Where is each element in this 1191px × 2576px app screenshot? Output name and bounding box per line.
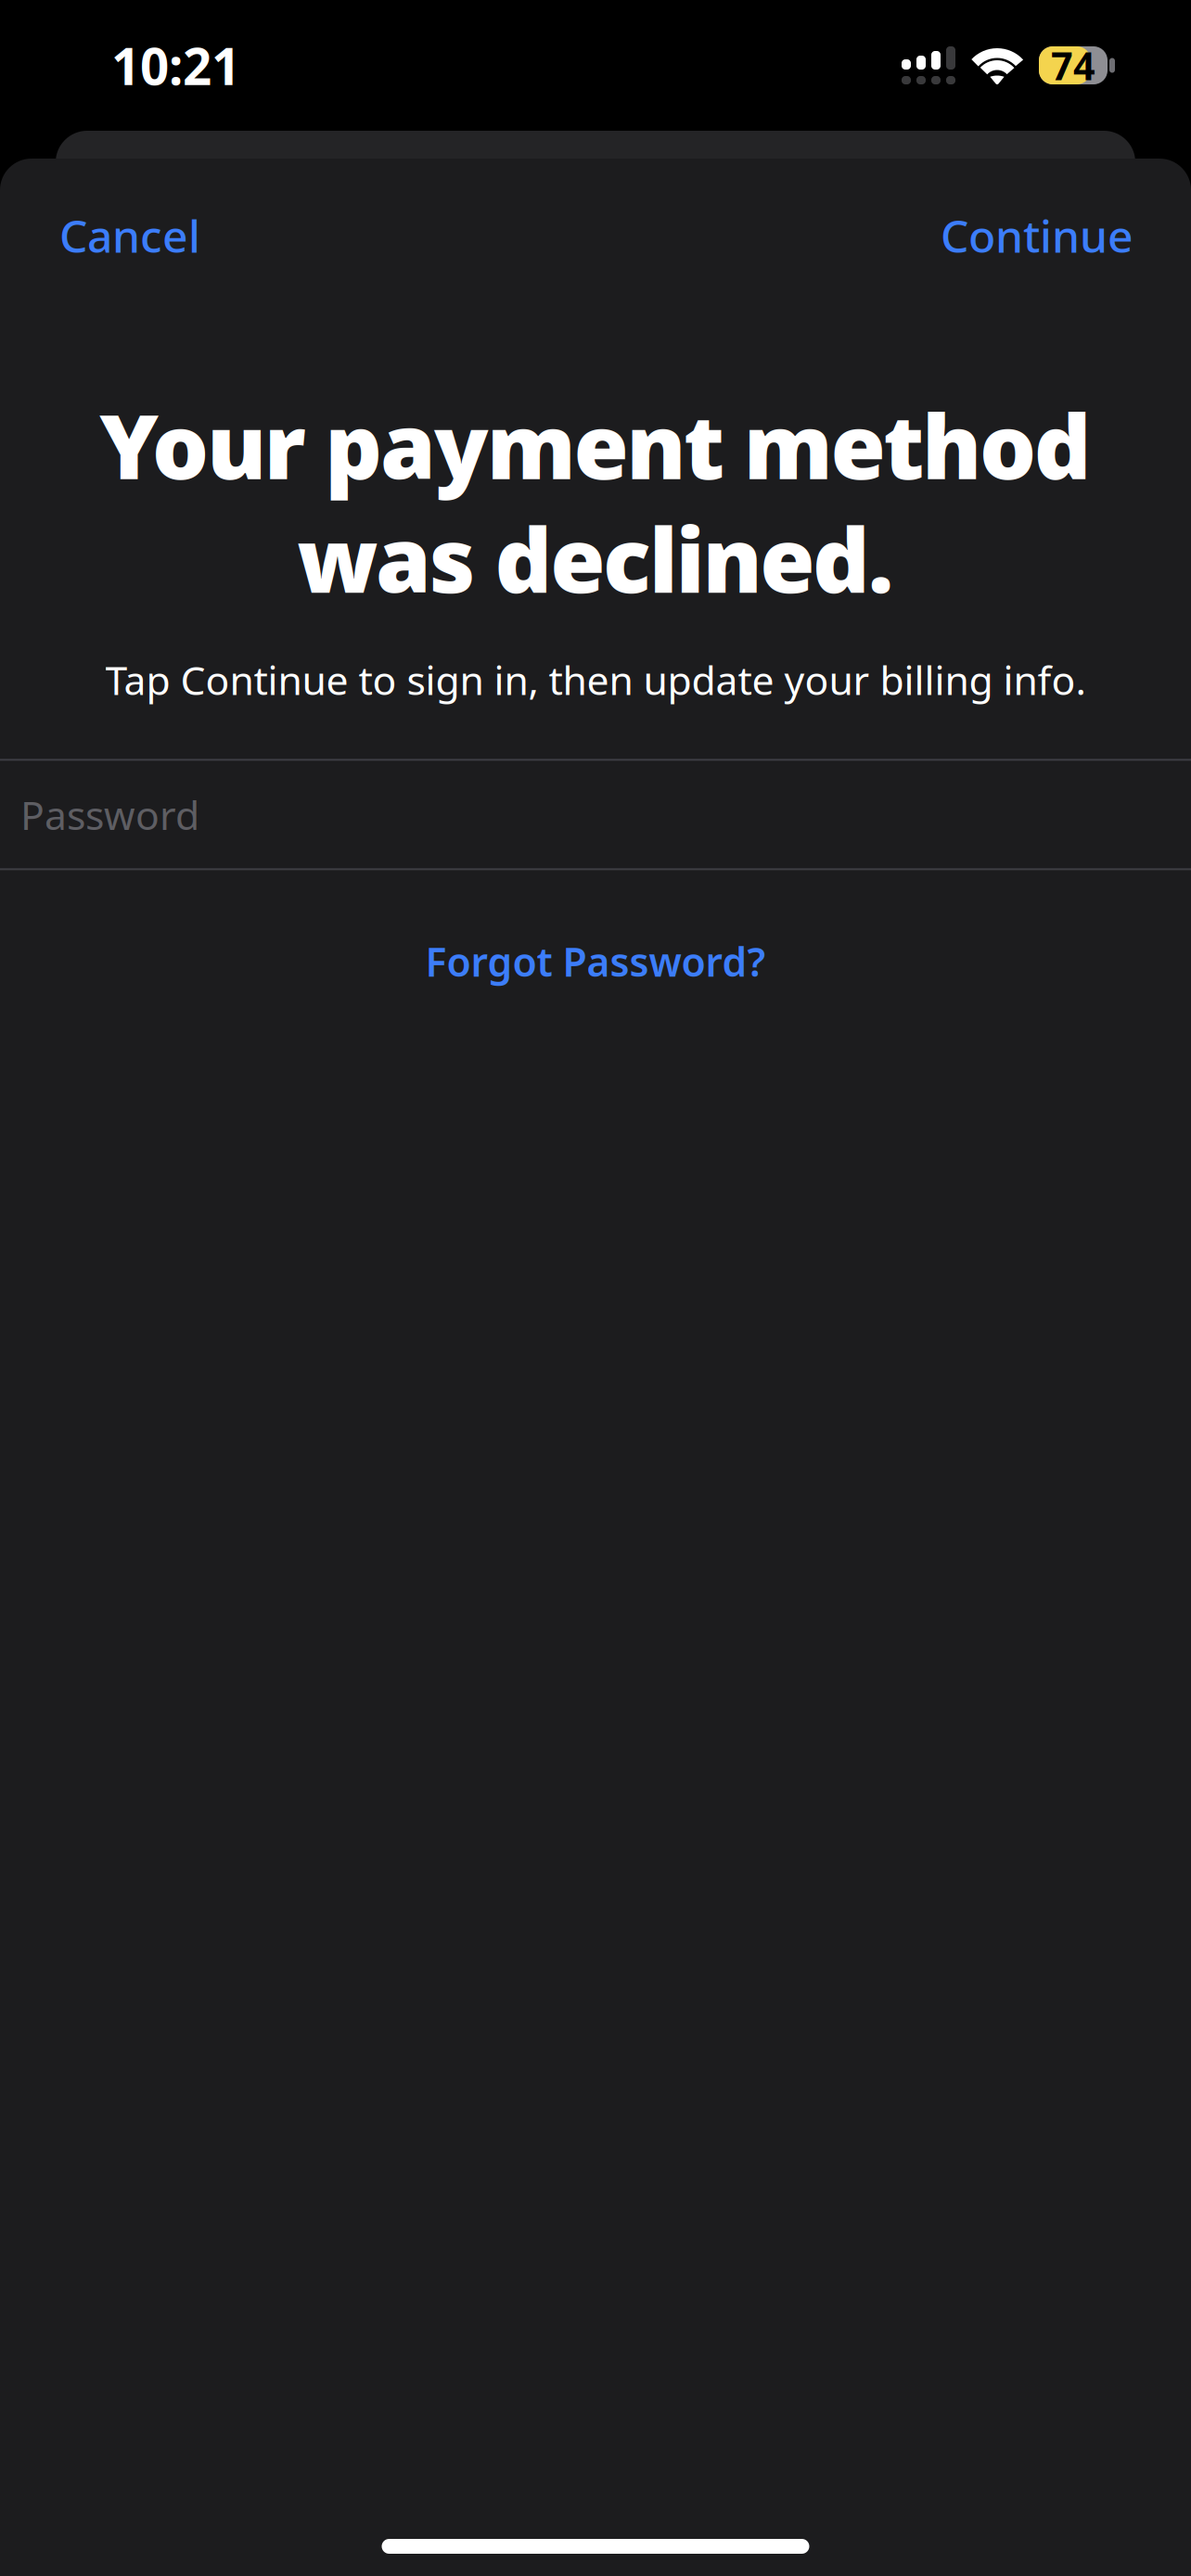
staticText: Password	[20, 788, 199, 841]
button[interactable]: Cancel	[0, 185, 237, 285]
button[interactable]: Password	[0, 759, 1191, 870]
staticText: Forgot Password?	[425, 935, 766, 988]
button[interactable]: Continue	[903, 185, 1191, 285]
staticText: Your payment method	[100, 385, 1091, 504]
staticText: Cancel	[59, 206, 200, 265]
staticText: 10:21	[111, 32, 240, 99]
staticText: Continue	[941, 206, 1133, 265]
button[interactable]: Forgot Password?	[0, 921, 1191, 1002]
staticText: was declined.	[297, 499, 894, 617]
staticText: 74	[1051, 40, 1095, 91]
staticText: Tap Continue to sign in, then update you…	[105, 653, 1086, 706]
